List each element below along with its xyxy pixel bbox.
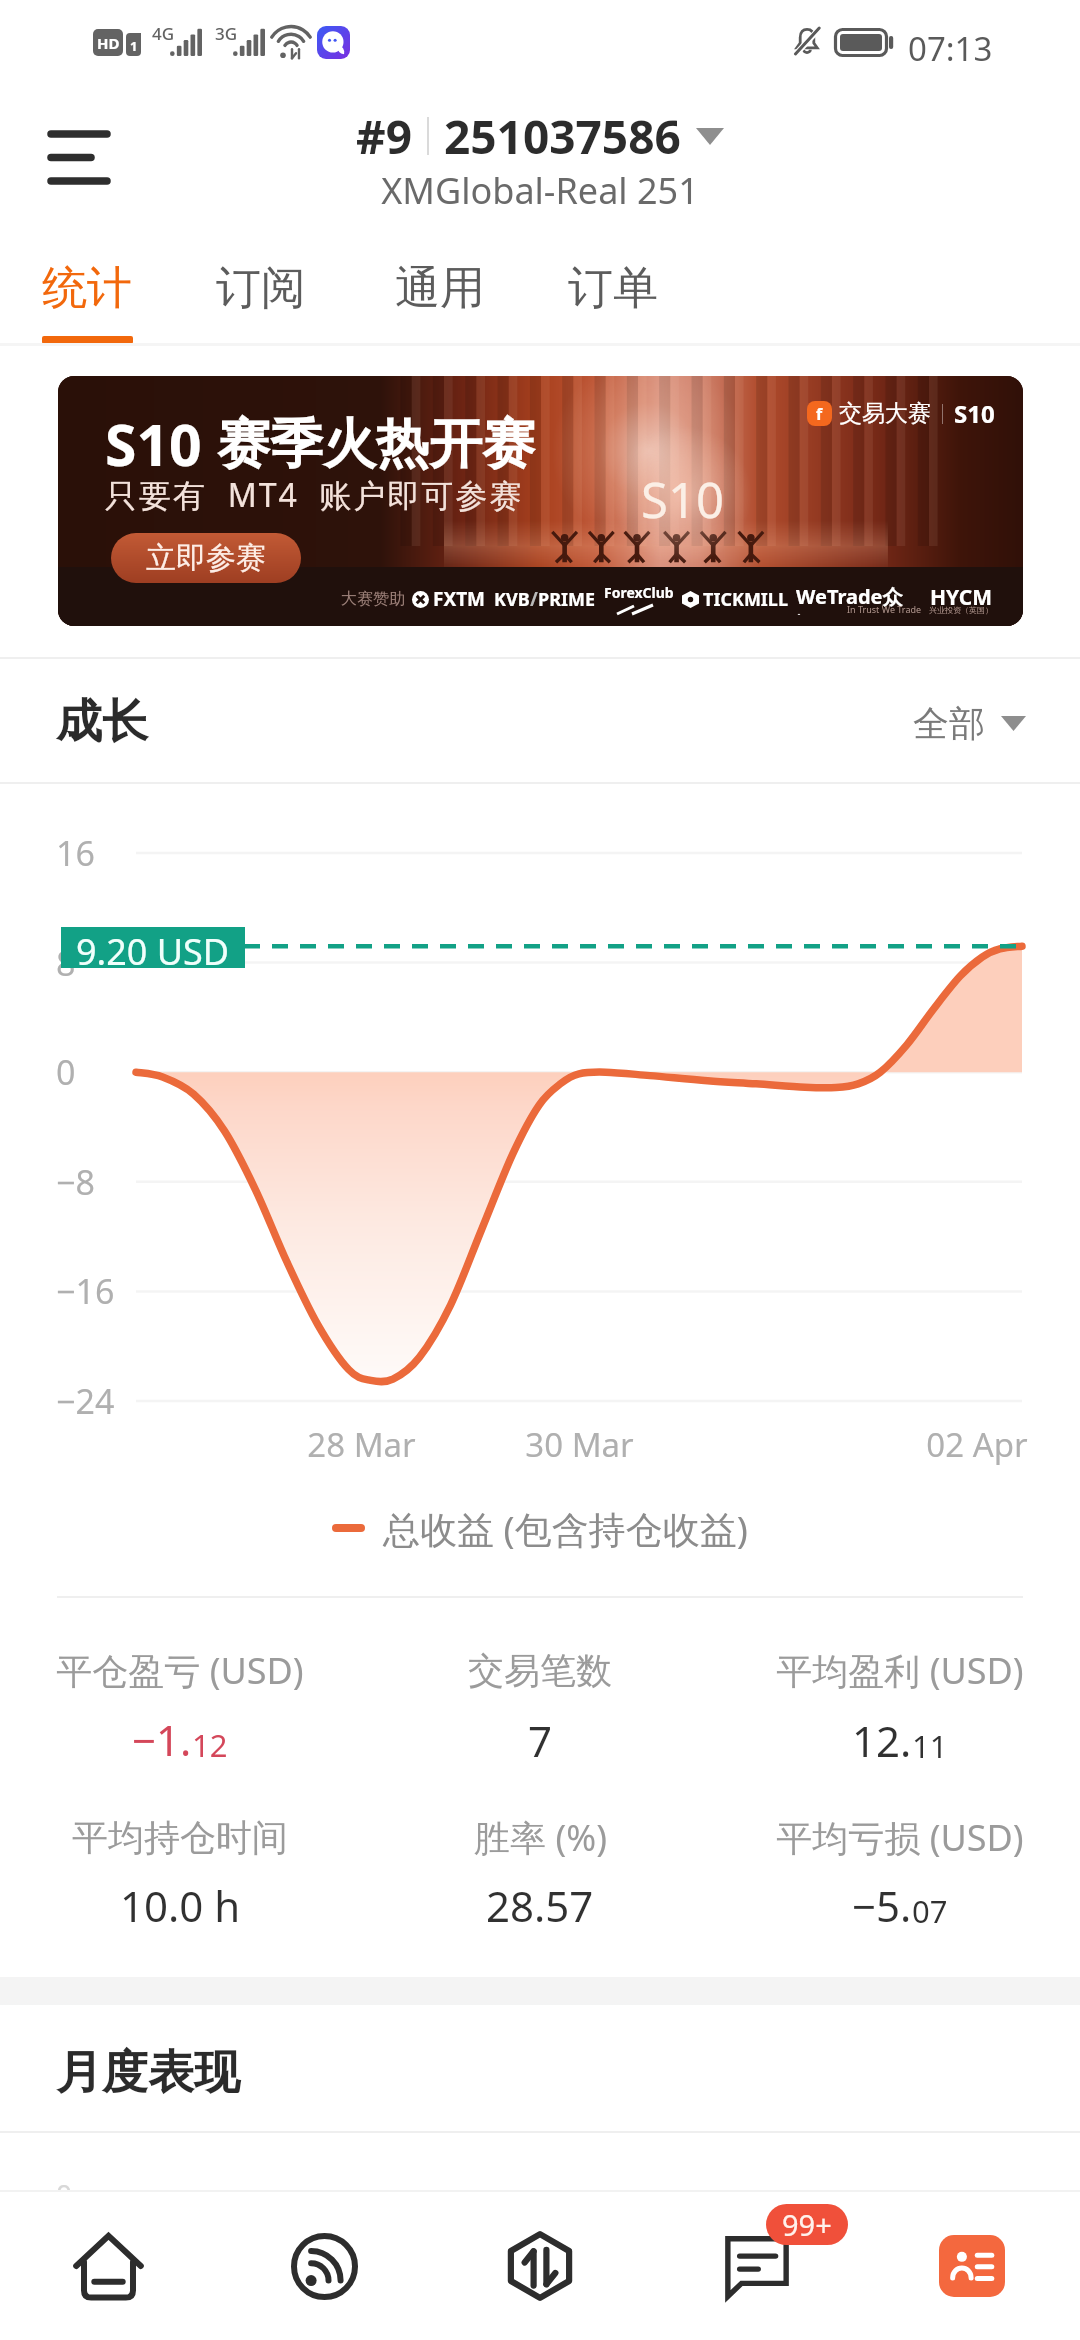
- staticText: 251037586: [444, 105, 681, 168]
- staticText: 立即参赛: [146, 539, 266, 577]
- staticText: 9.20 USD: [76, 927, 230, 968]
- staticText: −5.: [852, 1877, 912, 1934]
- staticText: 通用: [395, 260, 485, 317]
- staticText: 平均亏损 (USD): [776, 1813, 1024, 1862]
- staticText: −8: [56, 1159, 95, 1205]
- button[interactable]: Quotes: [0, 2192, 216, 2340]
- staticText: #9: [356, 105, 413, 168]
- staticText: WeTrade众汇: [796, 583, 922, 615]
- staticText: 赛季火热开赛: [217, 411, 535, 478]
- staticText: 11: [912, 1725, 948, 1767]
- staticText: 16: [56, 830, 95, 876]
- staticText: 02 Apr: [926, 1422, 1028, 1467]
- staticText: 30 Mar: [525, 1422, 634, 1467]
- staticText: 07: [912, 1890, 948, 1932]
- staticText: 10.0 h: [120, 1877, 241, 1934]
- staticText: 胜率 (%): [474, 1813, 607, 1862]
- staticText: −24: [56, 1378, 115, 1424]
- staticText: 交易大赛: [839, 399, 931, 428]
- staticText: 兴业投资（英国）: [929, 605, 993, 615]
- staticText: HD: [97, 33, 120, 53]
- staticText: 12.: [852, 1712, 912, 1769]
- staticText: KVB: [494, 587, 530, 612]
- staticText: FXTM: [433, 586, 486, 612]
- staticText: 1: [130, 37, 138, 55]
- staticText: 成长: [56, 693, 148, 751]
- staticText: 12: [192, 1724, 228, 1766]
- staticText: 全部: [913, 701, 985, 746]
- staticText: /: [530, 586, 538, 612]
- staticText: 只要有 MT4 账户即可参赛: [105, 473, 524, 517]
- staticText: 8: [56, 940, 76, 986]
- staticText: 3G: [215, 22, 238, 45]
- staticText: 4G: [152, 22, 175, 45]
- staticText: −16: [56, 1268, 115, 1314]
- staticText: 0: [56, 1049, 76, 1095]
- staticText: 28 Mar: [307, 1422, 416, 1467]
- button[interactable]: 订单: [555, 245, 671, 343]
- staticText: XMGlobal-Real 251: [381, 166, 699, 215]
- staticText: S10: [641, 466, 724, 524]
- button[interactable]: Messages: [648, 2192, 864, 2340]
- staticText: −1.: [132, 1711, 192, 1768]
- button[interactable]: Trade: [432, 2192, 648, 2340]
- staticText: 99+: [782, 2205, 832, 2244]
- button[interactable]: 立即参赛: [111, 533, 301, 583]
- staticText: 0: [56, 2175, 73, 2213]
- staticText: 7: [528, 1712, 553, 1769]
- button[interactable]: News: [216, 2192, 432, 2340]
- staticText: TICKMILL: [703, 587, 788, 612]
- staticText: HYCM: [930, 583, 993, 612]
- staticText: 统计: [42, 260, 132, 317]
- button[interactable]: 订阅: [203, 245, 319, 343]
- staticText: 总收益 (包含持仓收益): [383, 1503, 748, 1554]
- staticText: S10: [954, 397, 995, 430]
- button[interactable]: Menu: [28, 115, 130, 199]
- staticText: 订阅: [216, 260, 306, 317]
- button[interactable]: Settings: [864, 2192, 1080, 2340]
- staticText: 平均盈利 (USD): [776, 1646, 1024, 1695]
- button[interactable]: 统计: [29, 245, 145, 343]
- staticText: 07:13: [908, 26, 993, 71]
- staticText: 月度表现: [56, 2044, 240, 2102]
- staticText: 平均持仓时间: [72, 1815, 288, 1860]
- staticText: 平仓盈亏 (USD): [56, 1646, 304, 1695]
- staticText: 交易笔数: [468, 1648, 612, 1693]
- staticText: 28.57: [486, 1877, 594, 1934]
- button[interactable]: 全部: [913, 698, 1026, 748]
- staticText: f: [816, 403, 823, 425]
- staticText: S10: [105, 405, 202, 483]
- button[interactable]: S10: [58, 376, 1023, 626]
- staticText: ForexClub: [604, 583, 674, 602]
- staticText: 大赛赞助: [341, 589, 405, 609]
- staticText: 订单: [568, 260, 658, 317]
- button[interactable]: #9: [0, 104, 1080, 168]
- staticText: PRIME: [538, 587, 596, 612]
- staticText: In Trust We Trade: [847, 603, 922, 615]
- button[interactable]: 通用: [382, 245, 498, 343]
